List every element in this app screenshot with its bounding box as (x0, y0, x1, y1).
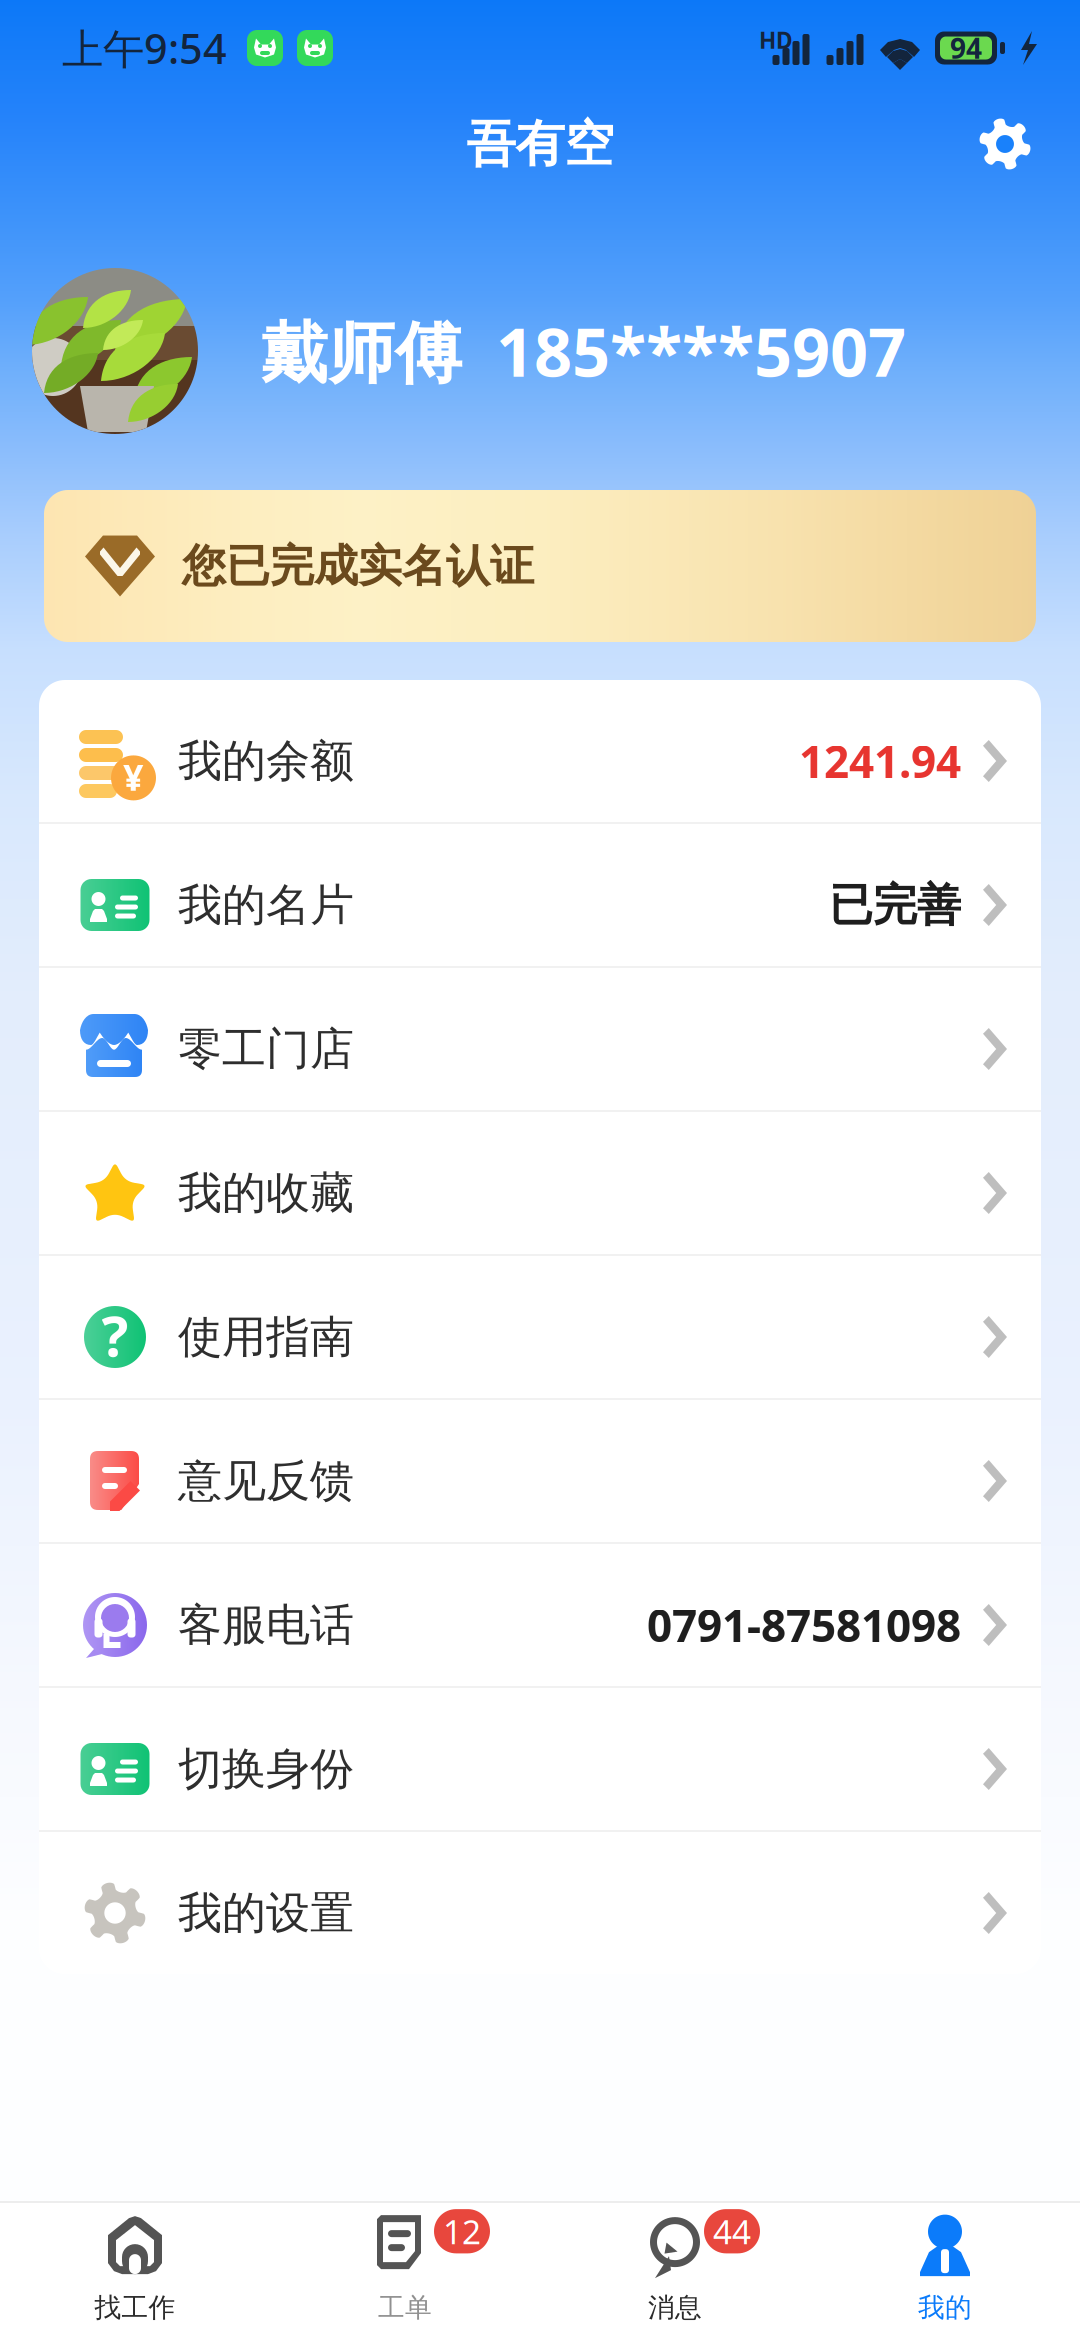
button[interactable]: 12 (270, 2201, 540, 2340)
button[interactable]: 您已完成实名认证 (44, 490, 1036, 642)
staticText: 我的名片 (178, 878, 354, 932)
staticText: 工单 (378, 2291, 432, 2324)
button[interactable]: 客服电话 (39, 1544, 1041, 1686)
button[interactable]: 零工门店 (39, 968, 1041, 1110)
button[interactable]: Settings (962, 101, 1048, 187)
staticText: 切换身份 (178, 1742, 354, 1796)
staticText: 使用指南 (178, 1310, 354, 1364)
staticText: 我的设置 (178, 1886, 354, 1940)
button[interactable]: 44 (540, 2201, 810, 2340)
button[interactable]: 我的设置 (39, 1832, 1041, 1974)
button[interactable]: 切换身份 (39, 1688, 1041, 1830)
staticText: 我的余额 (178, 734, 354, 788)
staticText: 零工门店 (178, 1022, 354, 1076)
staticText: 44 (713, 2209, 751, 2253)
button[interactable]: 我的名片 (39, 824, 1041, 966)
staticText: 戴师傅 185****5907 (261, 307, 906, 395)
staticText: 上午9:54 (62, 21, 227, 75)
button[interactable]: ? (39, 1256, 1041, 1398)
staticText: 客服电话 (178, 1598, 354, 1652)
staticText: 0791-87581098 (647, 1596, 961, 1654)
staticText: 找工作 (94, 2291, 175, 2324)
staticText: 94 (950, 29, 982, 67)
staticText: ¥ (123, 753, 144, 801)
staticText: 吾有空 (466, 114, 613, 174)
staticText: 消息 (648, 2291, 702, 2324)
staticText: HD (759, 25, 793, 55)
button[interactable]: 我的收藏 (39, 1112, 1041, 1254)
staticText: 您已完成实名认证 (182, 539, 534, 593)
staticText: 已完善 (829, 878, 961, 932)
button[interactable]: 找工作 (0, 2201, 270, 2340)
staticText: 意见反馈 (178, 1454, 354, 1508)
staticText: ? (101, 1298, 128, 1372)
staticText: 1241.94 (799, 732, 961, 790)
button[interactable]: ¥ (39, 680, 1041, 822)
button[interactable]: 我的 (810, 2201, 1080, 2340)
staticText: 我的 (918, 2291, 972, 2324)
button[interactable]: 意见反馈 (39, 1400, 1041, 1542)
staticText: 12 (443, 2209, 481, 2253)
staticText: 我的收藏 (178, 1166, 354, 1220)
